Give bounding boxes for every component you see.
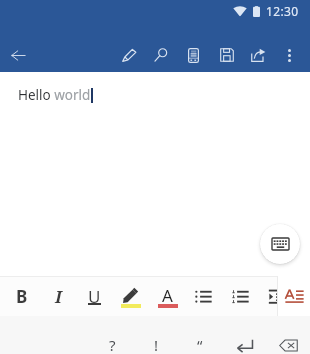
button[interactable]: More options [274,35,304,75]
button[interactable]: Enter [222,316,266,354]
button[interactable]: Font color [149,276,186,316]
staticText: “ [197,335,203,354]
staticText: Hello world [18,86,91,104]
button[interactable]: Edit [113,35,145,75]
button[interactable]: Bold [3,276,40,316]
staticText: B [16,285,28,308]
staticText: A [162,284,173,307]
button[interactable]: Highlight [112,276,149,316]
button[interactable]: Bulleted list [185,276,222,316]
button[interactable]: Back [4,41,32,69]
button[interactable]: Share [243,35,274,75]
staticText: 12:30 [266,3,299,19]
button[interactable]: Text styles [278,276,310,316]
button[interactable]: Show keyboard [260,224,300,264]
button[interactable]: Mobile view [177,35,210,75]
button[interactable]: Backspace [266,316,310,354]
staticText: U [88,285,101,308]
button[interactable]: Italic [40,276,77,316]
button[interactable]: Save [210,35,243,75]
staticText: I [55,285,62,308]
staticText: ? [109,335,116,354]
button[interactable]: Numbered list [222,276,259,316]
staticText: ! [154,335,159,354]
button[interactable]: Search [145,35,177,75]
button[interactable]: Underline [76,276,113,316]
button[interactable]: Indent [258,276,277,316]
button[interactable]: “ [178,316,222,354]
button[interactable]: ! [134,316,178,354]
button[interactable]: ? [90,316,134,354]
